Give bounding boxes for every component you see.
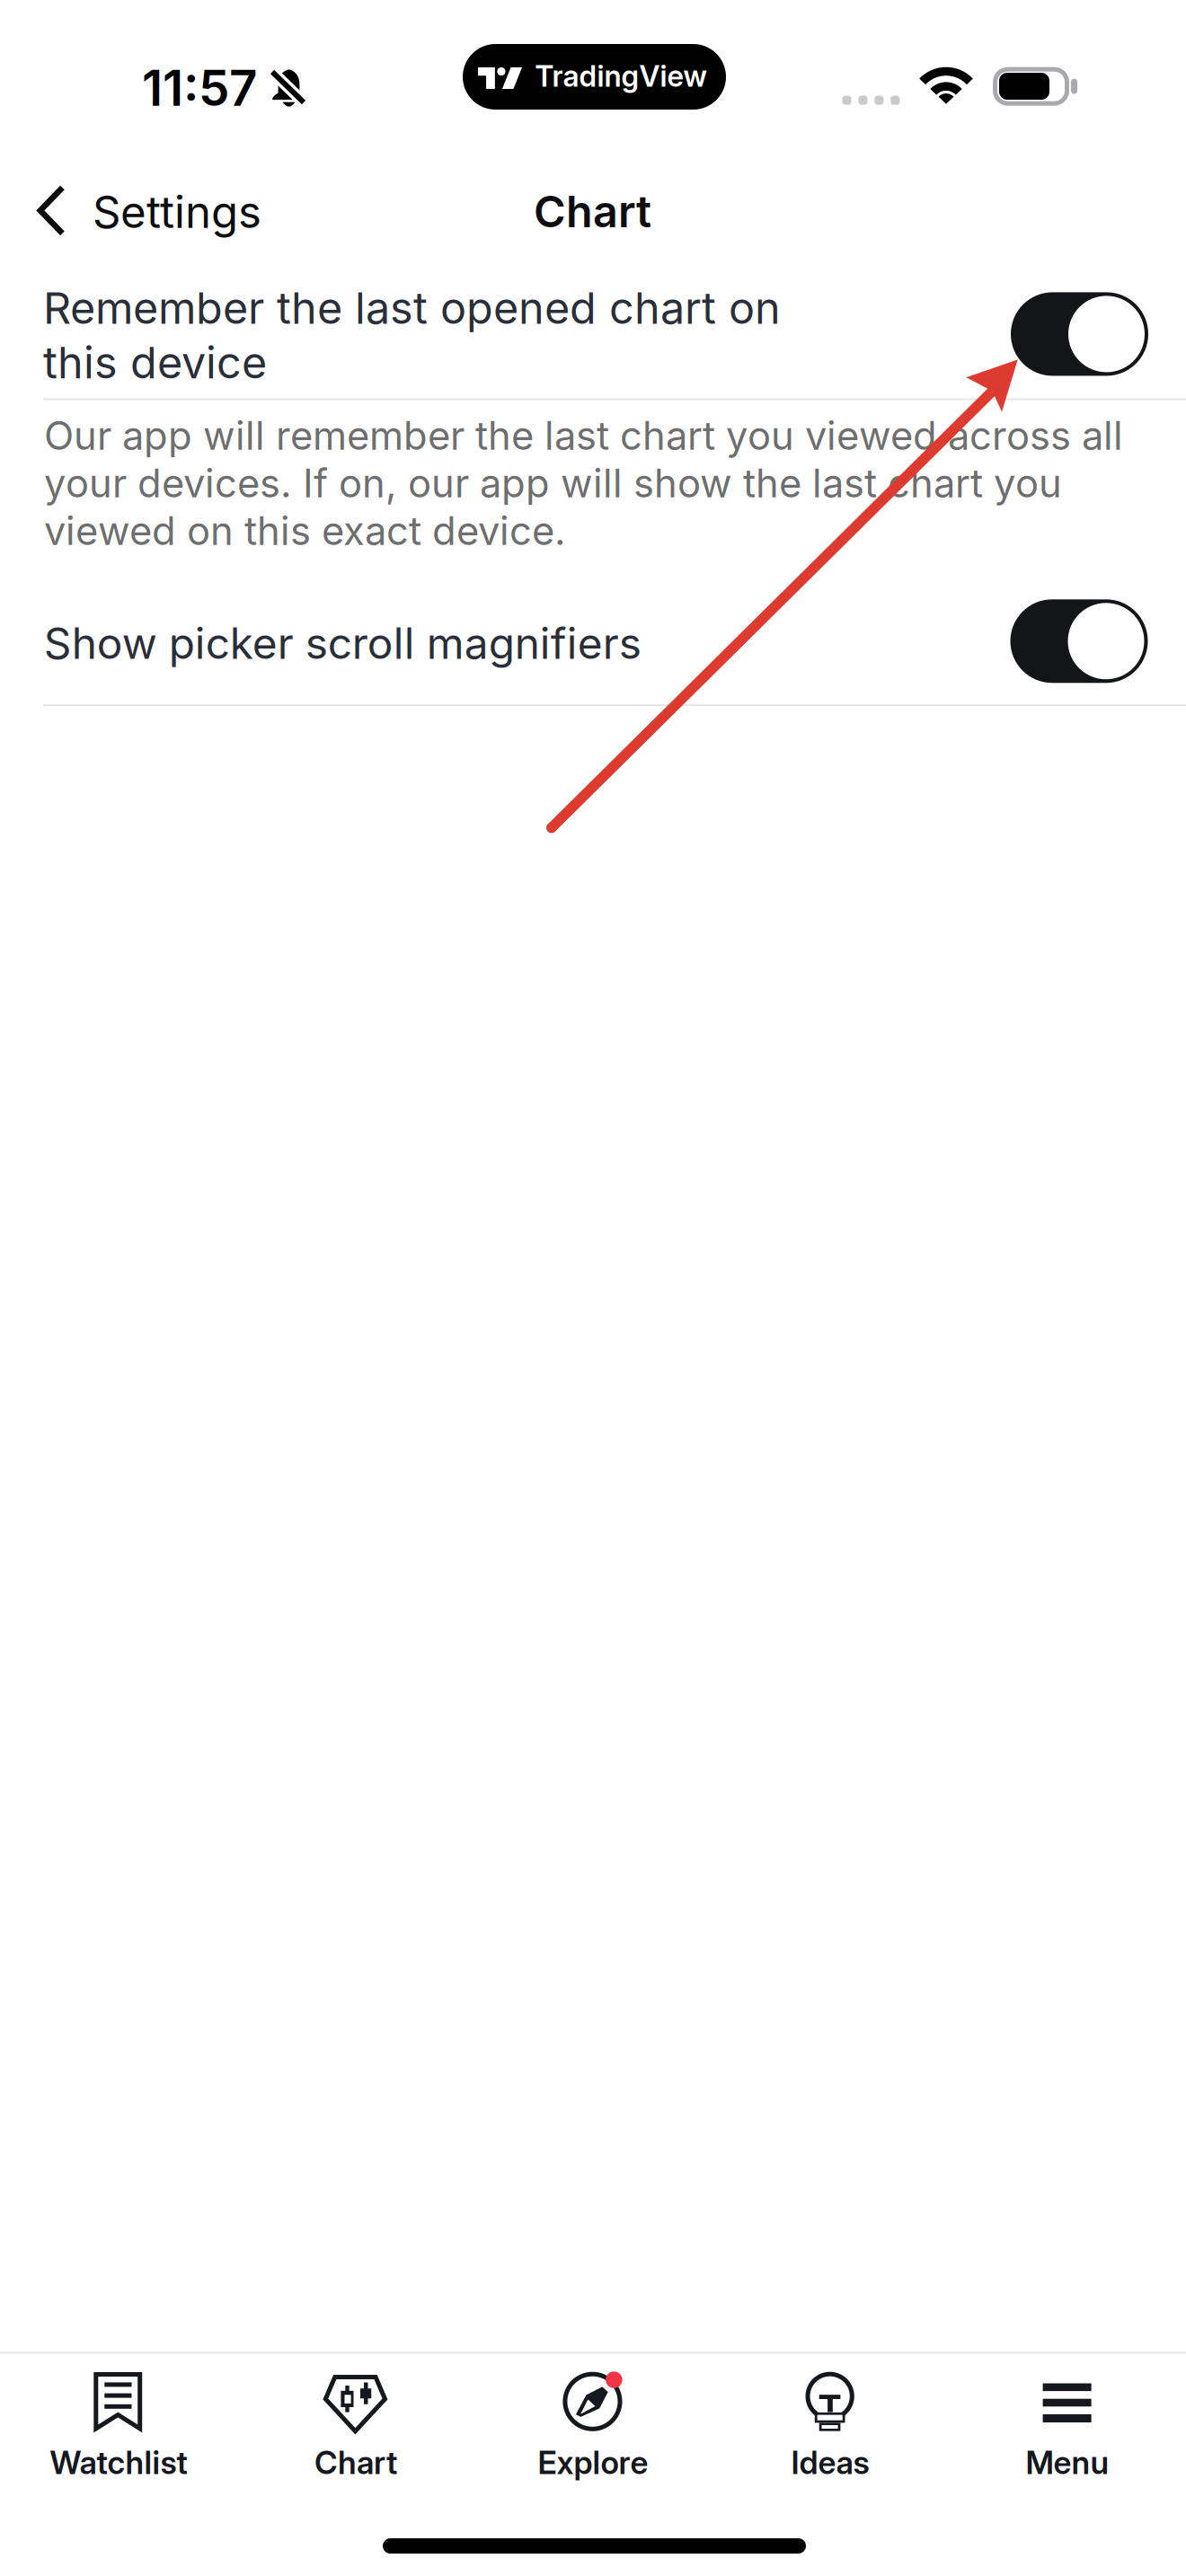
button[interactable]: Remember the last opened chart on this d… xyxy=(1011,292,1148,376)
staticText: Chart xyxy=(314,2444,397,2482)
button[interactable]: Ideas xyxy=(712,2371,949,2537)
button[interactable]: Show picker scroll magnifiers xyxy=(1010,599,1148,683)
staticText: Explore xyxy=(538,2444,648,2482)
button[interactable]: Explore xyxy=(474,2371,712,2537)
button[interactable]: Menu xyxy=(949,2371,1186,2537)
staticText: Show picker scroll magnifiers xyxy=(44,617,641,669)
button[interactable]: Chart xyxy=(237,2371,474,2537)
staticText: Watchlist xyxy=(50,2444,187,2482)
staticText: Chart xyxy=(534,185,651,238)
button[interactable]: Show picker scroll magnifiers xyxy=(0,578,1186,704)
staticText: Menu xyxy=(1026,2444,1109,2482)
staticText: 11:57 xyxy=(142,58,257,117)
button[interactable]: Remember the last opened chart on this d… xyxy=(0,257,1186,398)
staticText: Our app will remember the last chart you… xyxy=(44,412,1123,554)
staticText: TradingView xyxy=(535,59,707,94)
staticText: Ideas xyxy=(791,2444,869,2482)
staticText: Settings xyxy=(93,185,261,239)
button[interactable]: Settings xyxy=(0,173,279,249)
button[interactable]: Watchlist xyxy=(0,2371,237,2537)
staticText: Remember the last opened chart on this d… xyxy=(43,282,781,389)
